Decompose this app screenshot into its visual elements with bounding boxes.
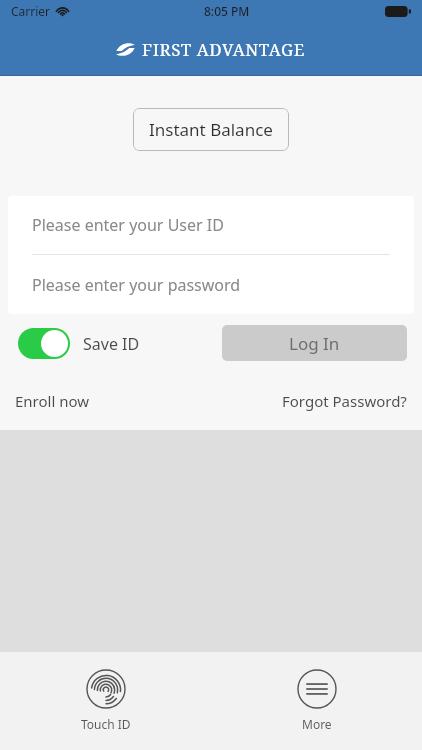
staticText: More: [302, 716, 332, 732]
button[interactable]: Forgot Password?: [282, 391, 407, 411]
button[interactable]: Log In: [222, 325, 407, 361]
staticText: 8:05 PM: [204, 3, 250, 19]
staticText: Carrier: [11, 3, 51, 19]
button[interactable]: Enroll now: [15, 391, 90, 411]
staticText: Please enter your password: [32, 274, 241, 296]
staticText: Forgot Password?: [282, 391, 407, 411]
staticText: Touch ID: [81, 716, 131, 732]
staticText: FIRST ADVANTAGE: [142, 38, 306, 61]
staticText: Instant Balance: [149, 118, 273, 141]
button[interactable]: Please enter your User ID: [8, 196, 414, 254]
button[interactable]: Instant Balance: [133, 108, 289, 151]
staticText: Save ID: [83, 333, 140, 355]
staticText: Please enter your User ID: [32, 214, 224, 236]
button[interactable]: Touch ID: [81, 669, 131, 732]
staticText: Log In: [289, 332, 340, 355]
button[interactable]: Save ID: [18, 328, 140, 359]
button[interactable]: More: [297, 669, 337, 732]
button[interactable]: Please enter your password: [8, 255, 414, 314]
staticText: Enroll now: [15, 391, 90, 411]
